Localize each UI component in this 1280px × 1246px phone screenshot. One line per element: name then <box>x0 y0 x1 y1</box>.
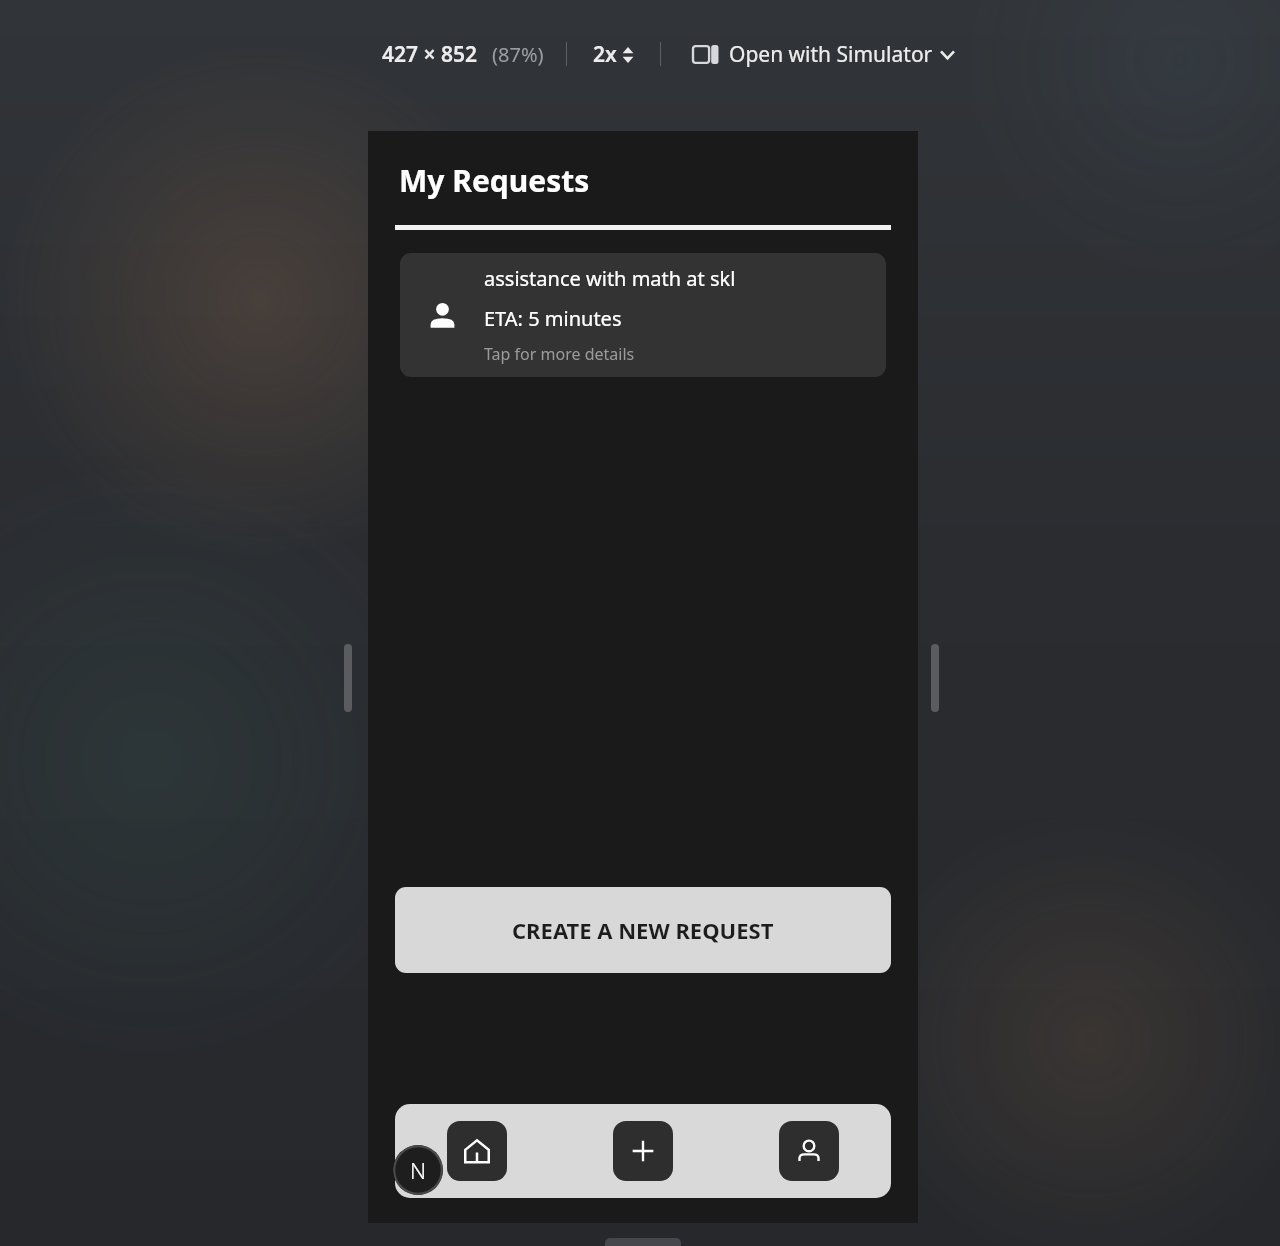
button[interactable]: Home <box>447 1121 507 1181</box>
button[interactable]: 2x <box>591 40 636 69</box>
staticText: CREATE A NEW REQUEST <box>512 915 774 945</box>
button[interactable]: CREATE A NEW REQUEST <box>395 887 891 973</box>
button[interactable]: Next.js dev indicator <box>393 1145 443 1195</box>
staticText: assistance with math at skl <box>484 265 736 292</box>
staticText: My Requests <box>399 160 590 201</box>
staticText: 2x <box>593 40 617 69</box>
staticText: 427 × 852 <box>382 40 478 69</box>
button[interactable]: assistance with math at skl <box>400 253 886 377</box>
button[interactable]: Profile <box>779 1121 839 1181</box>
button[interactable] <box>344 644 352 712</box>
staticText: N <box>410 1155 427 1185</box>
staticText: Tap for more details <box>484 343 635 365</box>
button[interactable]: Open with Simulator <box>691 40 956 69</box>
button[interactable]: Add request <box>613 1121 673 1181</box>
button[interactable] <box>931 644 939 712</box>
staticText: (87%) <box>492 41 544 68</box>
staticText: Open with Simulator <box>729 40 933 69</box>
staticText: ETA: 5 minutes <box>484 305 622 332</box>
